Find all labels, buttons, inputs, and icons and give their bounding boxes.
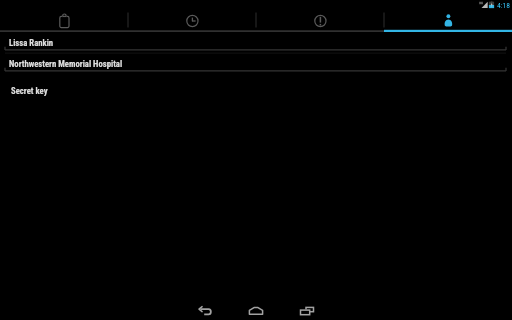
- button[interactable]: Profile: [384, 0, 512, 31]
- button[interactable]: Forms: [0, 0, 128, 31]
- button[interactable]: Northwestern Memorial Hospital: [0, 53, 512, 74]
- button[interactable]: Recent apps: [295, 299, 319, 320]
- button[interactable]: Home: [244, 299, 268, 320]
- staticText: Lissa Rankin: [9, 38, 54, 48]
- staticText: Northwestern Memorial Hospital: [9, 59, 123, 69]
- button[interactable]: History: [128, 0, 256, 31]
- staticText: 4:18: [497, 1, 511, 10]
- button[interactable]: Back: [193, 299, 217, 320]
- staticText: Secret key: [11, 86, 48, 96]
- button[interactable]: Alerts: [256, 0, 384, 31]
- button[interactable]: Lissa Rankin: [0, 32, 512, 53]
